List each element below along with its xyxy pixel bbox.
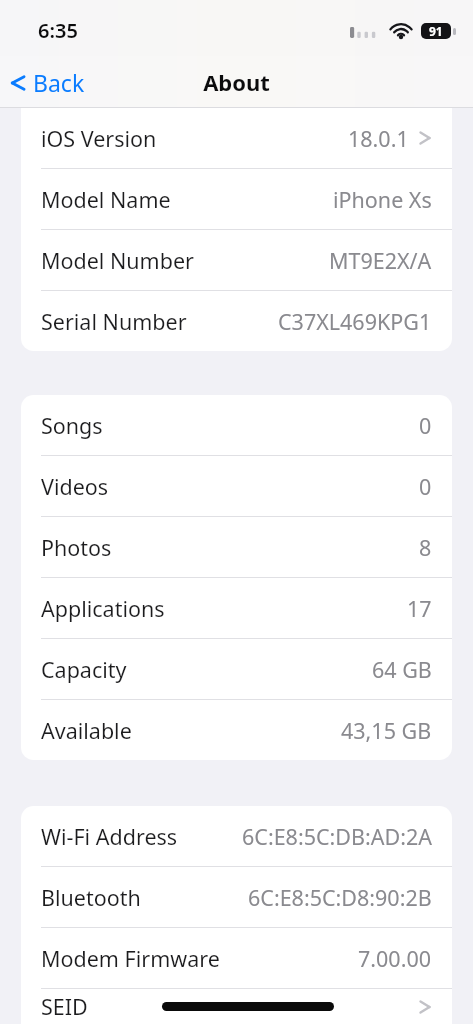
button[interactable]: Model Name bbox=[21, 169, 452, 229]
staticText: iPhone Xs bbox=[333, 185, 432, 214]
staticText: Model Number bbox=[41, 246, 194, 275]
button[interactable]: Applications bbox=[21, 578, 452, 638]
staticText: Videos bbox=[41, 472, 109, 501]
staticText: 43,15 GB bbox=[341, 716, 432, 745]
staticText: 6C:E8:5C:D8:90:2B bbox=[248, 883, 432, 912]
button[interactable]: Photos bbox=[21, 517, 452, 577]
staticText: Modem Firmware bbox=[41, 944, 220, 973]
staticText: Back bbox=[33, 67, 85, 98]
staticText: iOS Version bbox=[41, 124, 157, 153]
staticText: Capacity bbox=[41, 655, 127, 684]
staticText: MT9E2X/A bbox=[329, 246, 432, 275]
other: More details bbox=[418, 127, 432, 149]
other: More details bbox=[418, 996, 432, 1018]
staticText: Songs bbox=[41, 411, 103, 440]
staticText: 6C:E8:5C:DB:AD:2A bbox=[242, 822, 432, 851]
button[interactable]: Available bbox=[21, 700, 452, 760]
button[interactable]: Videos bbox=[21, 456, 452, 516]
staticText: 8 bbox=[419, 533, 432, 562]
button[interactable]: Bluetooth bbox=[21, 867, 452, 927]
staticText: 7.00.00 bbox=[358, 944, 432, 973]
staticText: 91 bbox=[429, 23, 443, 39]
staticText: 17 bbox=[407, 594, 432, 623]
button[interactable]: iOS Version bbox=[21, 108, 452, 168]
staticText: C37XL469KPG1 bbox=[278, 307, 432, 336]
staticText: About bbox=[203, 67, 270, 97]
button[interactable]: Model Number bbox=[21, 230, 452, 290]
staticText: Bluetooth bbox=[41, 883, 141, 912]
staticText: 0 bbox=[419, 472, 432, 501]
button[interactable]: Capacity bbox=[21, 639, 452, 699]
button[interactable]: Serial Number bbox=[21, 291, 452, 351]
staticText: 18.0.1 bbox=[348, 124, 409, 153]
button[interactable]: SEID bbox=[21, 989, 452, 1024]
staticText: 0 bbox=[419, 411, 432, 440]
staticText: SEID bbox=[41, 992, 88, 1021]
button[interactable]: Back bbox=[0, 61, 97, 104]
staticText: Available bbox=[41, 716, 132, 745]
button[interactable]: Modem Firmware bbox=[21, 928, 452, 988]
staticText: 64 GB bbox=[372, 655, 432, 684]
button[interactable]: Wi-Fi Address bbox=[21, 806, 452, 866]
staticText: Model Name bbox=[41, 185, 171, 214]
staticText: Wi-Fi Address bbox=[41, 822, 178, 851]
button[interactable]: Songs bbox=[21, 395, 452, 455]
staticText: 6:35 bbox=[38, 17, 78, 44]
staticText: Photos bbox=[41, 533, 112, 562]
staticText: Applications bbox=[41, 594, 165, 623]
staticText: Serial Number bbox=[41, 307, 187, 336]
